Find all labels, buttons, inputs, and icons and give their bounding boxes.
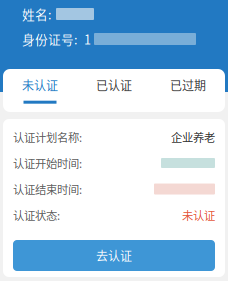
button[interactable]: 已过期 (151, 69, 225, 112)
staticText: 身份证号: 1 (22, 30, 91, 48)
staticText: 已过期 (170, 76, 206, 94)
button[interactable]: 已认证 (77, 69, 151, 112)
staticText: 姓名: (22, 5, 52, 23)
staticText: 认证状态: (13, 207, 60, 223)
staticText: 去认证 (96, 247, 132, 264)
staticText: 企业养老 (171, 129, 215, 145)
staticText: 已认证 (96, 76, 132, 94)
staticText: 认证计划名称: (13, 129, 82, 145)
staticText: 未认证 (22, 76, 58, 94)
staticText: 认证结束时间: (13, 181, 82, 197)
staticText: 未认证 (182, 207, 215, 223)
button[interactable]: 未认证 (3, 69, 77, 112)
button[interactable]: 去认证 (13, 240, 215, 271)
staticText: 认证开始时间: (13, 155, 82, 171)
